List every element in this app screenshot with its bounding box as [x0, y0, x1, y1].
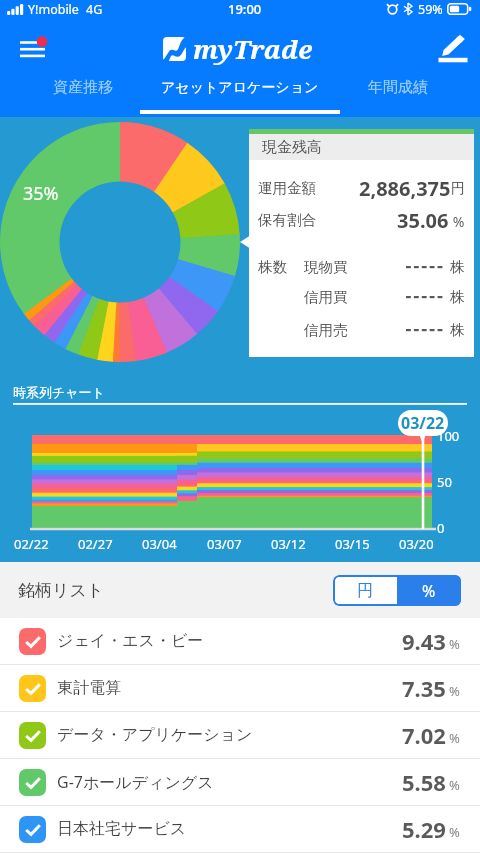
staticText: データ・アプリケーション [57, 725, 253, 745]
button[interactable]: 東計電算 [0, 665, 480, 711]
staticText: 35% [23, 181, 59, 206]
staticText: 7.35 [402, 673, 446, 703]
staticText: % [449, 212, 465, 231]
staticText: 現金残高 [262, 138, 322, 157]
staticText: % [449, 729, 460, 747]
staticText: G-7ホールディングス [57, 771, 214, 793]
staticText: 4G [86, 1, 103, 18]
button[interactable]: アセットアロケーション [165, 70, 315, 117]
staticText: 保有割合 [258, 211, 316, 229]
staticText: 59% [418, 1, 443, 18]
staticText: アセットアロケーション [161, 79, 319, 97]
staticText: 5.29 [402, 814, 446, 844]
staticText: 03/15 [335, 535, 370, 553]
button[interactable]: Menu [12, 28, 52, 68]
staticText: 2,886,375 [359, 175, 451, 202]
staticText: 信用売 [304, 321, 348, 339]
staticText: 19:00 [228, 0, 262, 18]
staticText: 日本社宅サービス [57, 819, 187, 839]
staticText: 03/12 [271, 535, 306, 553]
staticText: 02/22 [14, 535, 49, 553]
staticText: 東計電算 [57, 678, 121, 698]
button[interactable]: G-7ホールディングス [0, 759, 480, 805]
staticText: 時系列チャート [13, 384, 105, 400]
staticText: 株数 [258, 258, 287, 276]
staticText: 円 [357, 581, 373, 601]
staticText: 02/27 [78, 535, 113, 553]
staticText: 100 [437, 427, 460, 445]
staticText: 年間成績 [368, 78, 428, 97]
staticText: % [449, 776, 460, 794]
staticText: 株 [450, 258, 465, 276]
staticText: 株 [450, 321, 465, 339]
staticText: 5.58 [402, 767, 446, 797]
staticText: myTrade [193, 31, 313, 66]
staticText: 銘柄リスト [18, 580, 105, 601]
staticText: % [449, 635, 460, 653]
staticText: % [422, 580, 436, 602]
button[interactable]: 日本社宅サービス [0, 806, 480, 852]
button[interactable]: データ・アプリケーション [0, 712, 480, 758]
staticText: 円 [451, 180, 465, 198]
staticText: 9.43 [402, 626, 446, 656]
staticText: % [449, 823, 460, 841]
staticText: 資産推移 [53, 78, 113, 97]
staticText: 0 [437, 519, 445, 537]
staticText: 03/04 [142, 535, 177, 553]
staticText: % [449, 682, 460, 700]
button[interactable]: 資産推移 [0, 70, 165, 117]
button[interactable]: 年間成績 [315, 70, 480, 117]
staticText: 03/07 [207, 535, 242, 553]
staticText: 信用買 [304, 288, 348, 306]
staticText: 03/22 [401, 412, 445, 434]
button[interactable]: ジェイ・エス・ビー [0, 618, 480, 664]
staticText: 株 [450, 288, 465, 306]
staticText: 現物買 [304, 258, 348, 276]
staticText: 35.06 [397, 207, 449, 234]
staticText: 7.02 [402, 720, 446, 750]
staticText: ジェイ・エス・ビー [57, 631, 204, 651]
button[interactable]: % [397, 575, 461, 606]
button[interactable]: 円 [333, 575, 397, 606]
button[interactable]: Edit [433, 28, 473, 68]
staticText: Y!mobile [28, 1, 79, 18]
staticText: 50 [437, 473, 452, 491]
staticText: 運用金額 [258, 179, 316, 197]
staticText: 03/20 [399, 535, 434, 553]
